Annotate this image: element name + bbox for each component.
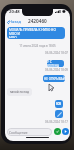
button[interactable]: Send (62, 128, 69, 135)
button[interactable]: Chart (55, 110, 63, 118)
button[interactable]: Voice message (54, 128, 61, 135)
button[interactable]: У С КОЛЕНА (47, 60, 64, 67)
staticText: SOS (56, 102, 62, 106)
staticText: 06.06.2024 18:09 (5, 68, 68, 72)
staticText: НЕ ОТКРЫВАЙ (44, 77, 65, 81)
button[interactable]: НЕ ОТКРЫВАЙ (43, 75, 65, 82)
staticText: 06.06.2024 18:07 (5, 51, 68, 55)
staticText: Сообщение (9, 130, 28, 134)
staticText: МОБИЛЬ ПРИВЕЛА К НУЛЮ НО МФО И МФО (9, 28, 63, 38)
staticText: 2420460 (28, 18, 47, 24)
button[interactable]: SOS (55, 100, 63, 108)
button[interactable]: МОБИЛЬ ПРИВЕЛА К НУЛЮ НО МФО И МФО (7, 27, 65, 39)
button[interactable]: какой-то код (7, 88, 32, 96)
staticText: 20:48 (9, 9, 20, 15)
staticText: какой-то код (10, 90, 29, 94)
staticText: Назад (9, 19, 22, 25)
button[interactable]: Назад (6, 18, 23, 26)
staticText: У С КОЛЕНА (47, 60, 64, 67)
staticText: 11 июня 2024 года в 18:05 (5, 44, 70, 48)
button[interactable]: Сообщение (7, 128, 52, 136)
staticText: 06.06.2024 18:17 (5, 120, 68, 124)
